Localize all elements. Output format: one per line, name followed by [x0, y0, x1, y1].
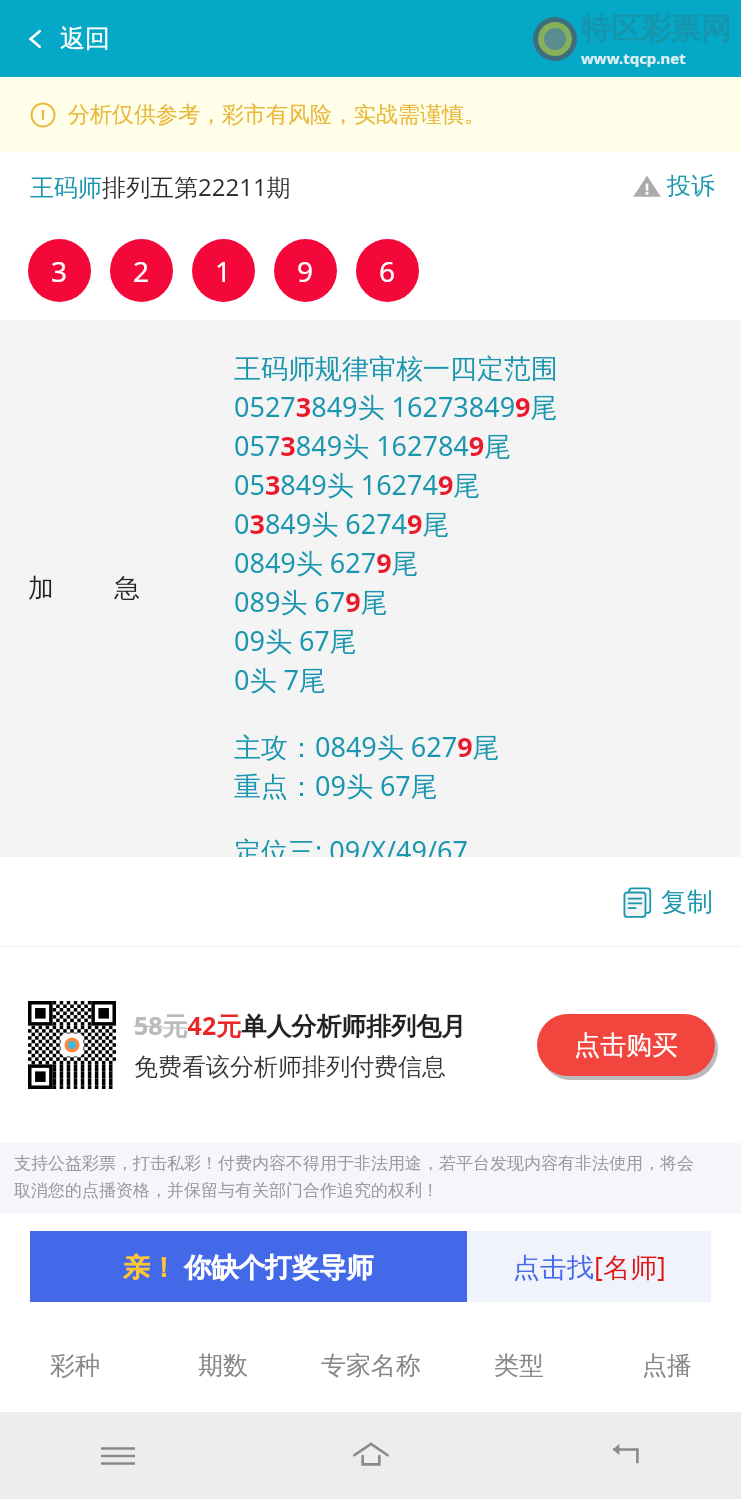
button[interactable]: 投诉 [632, 171, 715, 201]
staticText: 免费看该分析师排列付费信息 [134, 1052, 446, 1082]
staticText: 定位三: 09/X/49/67 [234, 832, 468, 857]
staticText: 专家名称 [321, 1350, 421, 1381]
staticText: 复制 [661, 886, 713, 919]
button[interactable]: 期数 [149, 1319, 297, 1412]
button[interactable]: 专家名称 [297, 1319, 445, 1412]
staticText: 05273849头 162738499尾 [234, 388, 558, 425]
staticText: 分析仅供参考，彩市有风险，实战需谨慎。 [68, 101, 486, 129]
staticText: www.tqcp.net [581, 48, 686, 68]
button[interactable]: 返回 [22, 23, 110, 54]
staticText: 点播 [642, 1350, 692, 1381]
staticText: 3 [51, 252, 68, 290]
staticText: 类型 [494, 1350, 544, 1381]
staticText: 0849头 6279尾 [234, 544, 419, 581]
staticText: 03849头 62749尾 [234, 505, 450, 542]
staticText: 加 [28, 572, 54, 605]
staticText: 急 [114, 572, 140, 605]
button[interactable]: 复制 [621, 885, 713, 919]
staticText: 点击购买 [574, 1029, 678, 1062]
staticText: 主攻：0849头 6279尾 [234, 728, 500, 765]
staticText: 09头 67尾 [234, 622, 357, 659]
staticText: 王码师排列五第22211期 [30, 170, 291, 203]
staticText: 亲！ 你缺个打奖导师 [123, 1248, 374, 1285]
staticText: 053849头 162749尾 [234, 466, 481, 503]
staticText: 0头 7尾 [234, 661, 326, 698]
button[interactable]: Home [343, 1428, 399, 1484]
staticText: 58元42元单人分析师排列包月 [134, 1008, 467, 1042]
staticText: 点击找[名师] [513, 1248, 666, 1285]
staticText: 9 [297, 252, 314, 290]
button[interactable]: Menu [90, 1428, 146, 1484]
button[interactable]: 点击找[名师] [467, 1231, 711, 1302]
staticText: 089头 679尾 [234, 583, 388, 620]
staticText: 返回 [60, 23, 110, 54]
staticText: 重点：09头 67尾 [234, 767, 438, 804]
staticText: 彩种 [50, 1350, 100, 1381]
button[interactable]: Back [595, 1428, 651, 1484]
staticText: 期数 [198, 1350, 248, 1381]
staticText: 王码师规律审核一四定范围 [234, 352, 558, 386]
button[interactable]: 点击购买 [537, 1014, 715, 1076]
button[interactable]: 类型 [445, 1319, 593, 1412]
staticText: 支持公益彩票，打击私彩！付费内容不得用于非法用途，若平台发现内容有非法使用，将会 [14, 1153, 694, 1174]
staticText: 6 [379, 252, 396, 290]
button[interactable]: 彩种 [0, 1319, 149, 1412]
staticText: 0573849头 1627849尾 [234, 427, 512, 464]
staticText: 1 [215, 252, 232, 290]
staticText: 投诉 [667, 171, 715, 201]
staticText: 取消您的点播资格，并保留与有关部门合作追究的权利！ [14, 1180, 439, 1201]
staticText: 2 [133, 252, 150, 290]
button[interactable]: 点播 [593, 1319, 741, 1412]
staticText: 特区彩票网 [581, 10, 731, 48]
button[interactable]: 亲！ 你缺个打奖导师 [30, 1231, 467, 1302]
